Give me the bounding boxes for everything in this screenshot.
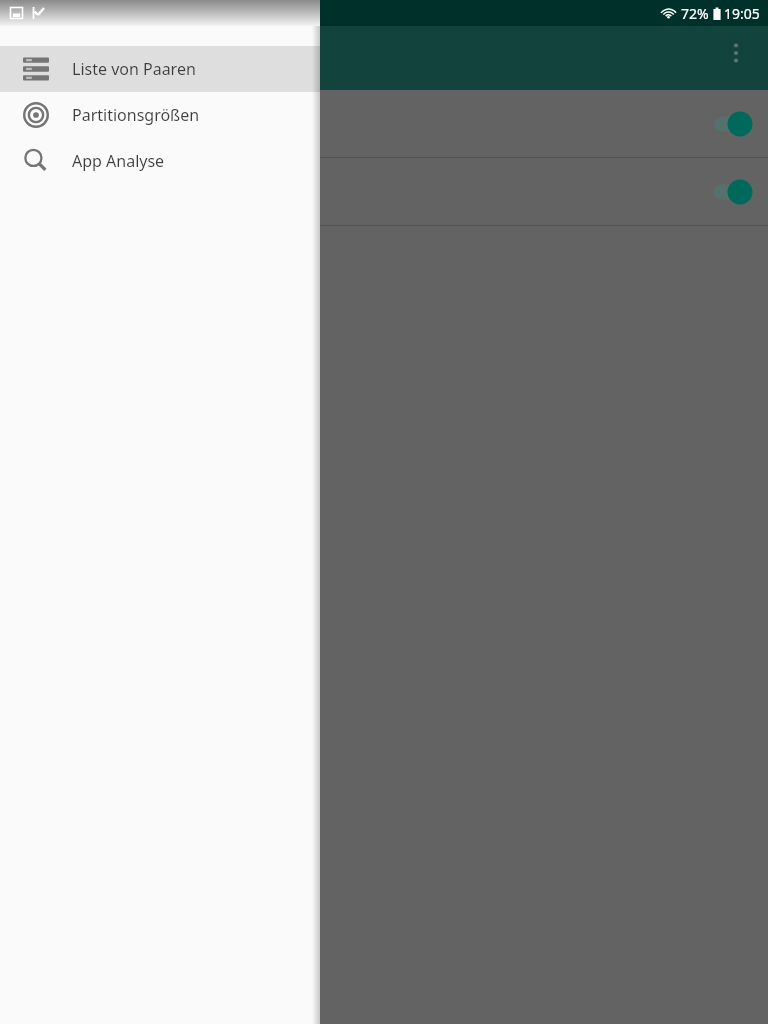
staticText: Liste von Paaren [72, 58, 196, 80]
button[interactable]: Toggle [704, 104, 760, 144]
staticText: 72% [681, 4, 709, 23]
staticText: 19:05 [724, 4, 760, 23]
staticText: Partitionsgrößen [72, 104, 200, 126]
button[interactable]: More options [713, 30, 759, 76]
button[interactable]: Toggle [0, 158, 768, 225]
button[interactable]: Partitionsgrößen [0, 92, 320, 138]
button[interactable]: Liste von Paaren [0, 46, 320, 92]
button[interactable]: App Analyse [0, 138, 320, 184]
button[interactable]: Toggle [0, 90, 768, 157]
staticText: App Analyse [72, 150, 165, 172]
button[interactable]: Toggle [704, 172, 760, 212]
